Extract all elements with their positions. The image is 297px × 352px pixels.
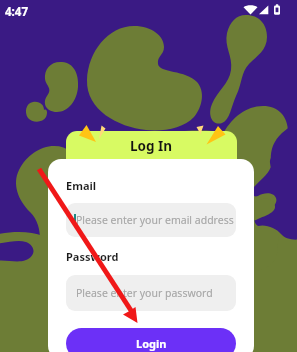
staticText: Password <box>66 249 119 264</box>
staticText: Login <box>136 336 167 351</box>
button[interactable]: Log In <box>66 131 237 160</box>
staticText: Log In <box>130 137 173 155</box>
button[interactable]: Please enter your password <box>66 275 236 311</box>
button[interactable]: Login <box>66 328 236 352</box>
button[interactable]: Please enter your email address <box>66 203 236 237</box>
staticText: Please enter your email address <box>76 213 234 227</box>
staticText: Please enter your password <box>76 286 213 300</box>
staticText: 4:47 <box>5 4 28 20</box>
staticText: Email <box>66 178 97 193</box>
